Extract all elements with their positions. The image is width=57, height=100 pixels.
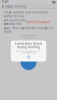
staticText: reset the device [23,37,34,39]
button[interactable]: OK [26,56,30,59]
staticText: Please check the network and retry [16,50,41,52]
staticText: Device binding [5,5,26,8]
staticText: Please click the Lost Connection button … [3,11,48,18]
staticText: If the indicator is not blinking [20,35,36,36]
button[interactable]: Back [2,4,4,9]
staticText: and connect the camera to the [3,19,26,26]
staticText: again, then wait for the indicator to bl… [3,26,53,33]
staticText: ▮▮▮ [52,0,55,3]
staticText: connecting the device [21,52,36,54]
staticText: wireless network [26,20,49,24]
staticText: during binding [17,45,40,49]
staticText: Connection failed [15,42,42,45]
staticText: OK [26,56,30,59]
staticText: 9:41 [2,0,9,4]
